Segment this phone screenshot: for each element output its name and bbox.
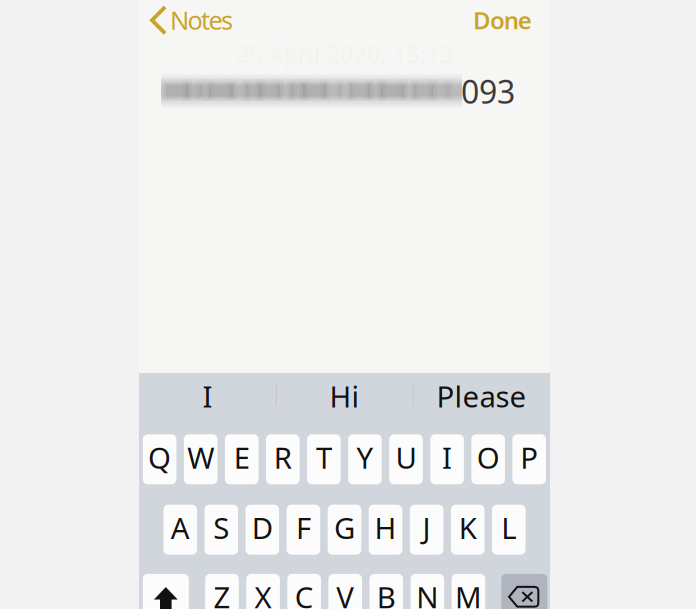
button[interactable]: E <box>225 434 258 484</box>
staticText: C <box>295 577 314 609</box>
button[interactable]: Notes <box>139 0 241 40</box>
button[interactable]: V <box>328 574 362 609</box>
staticText: L <box>501 508 516 547</box>
staticText: T <box>316 438 332 477</box>
button[interactable]: Done <box>461 0 546 40</box>
button[interactable]: S <box>204 505 238 555</box>
staticText: W <box>187 438 214 477</box>
staticText: Please <box>436 376 526 415</box>
staticText: R <box>274 438 292 477</box>
button[interactable]: F <box>287 505 320 555</box>
button[interactable]: G <box>328 505 361 555</box>
button[interactable]: J <box>410 505 443 555</box>
staticText: N <box>416 577 438 609</box>
staticText: I <box>442 438 452 477</box>
button[interactable]: D <box>245 505 279 555</box>
staticText: J <box>423 508 431 547</box>
button[interactable]: Q <box>143 434 176 484</box>
button[interactable]: P <box>512 434 546 484</box>
button[interactable]: W <box>184 434 217 484</box>
staticText: B <box>377 577 396 609</box>
staticText: U <box>395 438 416 477</box>
button[interactable]: T <box>307 434 341 484</box>
staticText: M <box>455 577 482 609</box>
button[interactable]: Y <box>348 434 382 484</box>
button[interactable]: M <box>452 574 485 609</box>
staticText: Notes <box>170 3 233 37</box>
button[interactable]: B <box>369 574 403 609</box>
button[interactable]: U <box>389 434 423 484</box>
button[interactable]: I <box>139 373 276 419</box>
button[interactable]: Hi <box>276 373 413 419</box>
staticText: D <box>252 508 273 547</box>
staticText: 093 <box>461 70 515 112</box>
button[interactable]: I <box>430 434 464 484</box>
staticText: F <box>296 508 311 547</box>
staticText: X <box>255 577 272 609</box>
button[interactable]: R <box>266 434 300 484</box>
button[interactable]: L <box>492 505 526 555</box>
button[interactable]: Z <box>205 574 239 609</box>
button[interactable]: K <box>451 505 484 555</box>
staticText: V <box>336 577 354 609</box>
staticText: H <box>375 508 397 547</box>
staticText: Z <box>213 577 230 609</box>
staticText: P <box>520 438 538 477</box>
staticText: Done <box>473 4 532 36</box>
button[interactable]: Please <box>413 373 550 419</box>
staticText: Hi <box>329 376 359 415</box>
staticText: G <box>334 508 355 547</box>
staticText: A <box>171 508 190 547</box>
staticText: I <box>202 376 212 415</box>
staticText: S <box>213 508 229 547</box>
staticText: E <box>234 438 250 477</box>
button[interactable]: H <box>369 505 402 555</box>
staticText: Q <box>148 438 171 477</box>
button[interactable]: Delete <box>501 574 547 609</box>
button[interactable]: A <box>163 505 197 555</box>
button[interactable]: N <box>411 574 444 609</box>
button[interactable]: X <box>246 574 280 609</box>
staticText: O <box>477 438 500 477</box>
staticText: K <box>459 508 477 547</box>
button[interactable]: C <box>287 574 321 609</box>
button[interactable]: Shift <box>143 574 189 609</box>
staticText: Y <box>356 438 373 477</box>
button[interactable]: O <box>471 434 505 484</box>
